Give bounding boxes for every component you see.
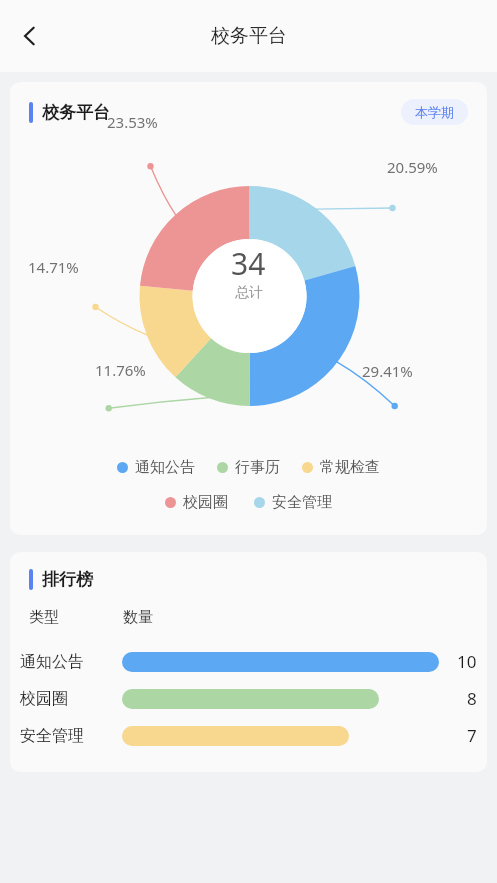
- staticText: 通知公告: [135, 458, 195, 477]
- staticText: 校园圈: [183, 493, 228, 512]
- button[interactable]: 本学期: [401, 99, 468, 125]
- staticText: 安全管理: [20, 726, 84, 746]
- staticText: 总计: [235, 284, 263, 302]
- staticText: 8: [467, 687, 477, 710]
- staticText: 10: [457, 650, 477, 673]
- staticText: 14.71%: [28, 257, 79, 277]
- staticText: 校务平台: [42, 102, 110, 123]
- button[interactable]: 通知公告: [10, 643, 487, 680]
- staticText: 常规检查: [320, 458, 380, 477]
- staticText: 11.76%: [95, 360, 146, 380]
- staticText: 通知公告: [20, 652, 84, 672]
- button[interactable]: Back: [6, 12, 54, 60]
- staticText: 本学期: [415, 104, 454, 120]
- staticText: 数量: [123, 608, 153, 627]
- staticText: 23.53%: [107, 112, 158, 132]
- button[interactable]: 安全管理: [10, 717, 487, 754]
- staticText: 校园圈: [20, 689, 68, 709]
- button[interactable]: 校园圈: [159, 490, 234, 515]
- staticText: 7: [467, 724, 477, 747]
- staticText: 安全管理: [272, 493, 332, 512]
- button[interactable]: 校园圈: [10, 680, 487, 717]
- button[interactable]: 常规检查: [296, 455, 386, 480]
- staticText: 行事历: [235, 458, 280, 477]
- staticText: 类型: [29, 608, 59, 627]
- staticText: 排行榜: [42, 569, 93, 590]
- staticText: 20.59%: [387, 157, 438, 177]
- staticText: 34: [231, 243, 266, 284]
- staticText: 29.41%: [362, 361, 413, 381]
- button[interactable]: 安全管理: [248, 490, 338, 515]
- staticText: 校务平台: [211, 24, 287, 48]
- button[interactable]: 通知公告: [111, 455, 201, 480]
- button[interactable]: 行事历: [211, 455, 286, 480]
